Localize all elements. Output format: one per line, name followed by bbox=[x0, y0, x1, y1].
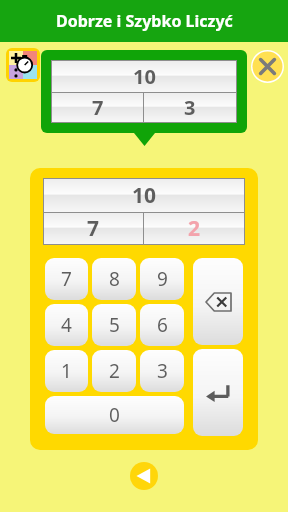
staticText: 1 bbox=[61, 358, 72, 384]
button[interactable]: App icon bbox=[6, 48, 40, 82]
staticText: 10 bbox=[133, 63, 156, 90]
button[interactable]: 5 bbox=[92, 304, 136, 346]
staticText: 4 bbox=[61, 312, 72, 338]
button[interactable]: 4 bbox=[45, 304, 88, 346]
staticText: 2 bbox=[109, 358, 120, 384]
button[interactable]: 8 bbox=[92, 258, 136, 300]
button[interactable]: 0 bbox=[45, 396, 184, 434]
button[interactable]: 7 bbox=[45, 258, 88, 300]
staticText: 10 bbox=[132, 181, 157, 210]
button[interactable]: 9 bbox=[140, 258, 184, 300]
staticText: 7 bbox=[92, 94, 104, 121]
button[interactable]: 1 bbox=[45, 350, 88, 392]
staticText: 3 bbox=[157, 358, 168, 384]
staticText: 5 bbox=[109, 312, 120, 338]
staticText: 7 bbox=[87, 214, 100, 243]
staticText: 7 bbox=[61, 266, 72, 292]
button[interactable]: Backspace bbox=[193, 258, 243, 345]
staticText: 0 bbox=[109, 402, 120, 428]
staticText: 6 bbox=[157, 312, 168, 338]
button[interactable]: Close bbox=[251, 50, 284, 83]
button[interactable]: 2 bbox=[92, 350, 136, 392]
button[interactable]: Enter bbox=[193, 349, 243, 436]
staticText: 3 bbox=[184, 94, 196, 121]
staticText: Dobrze i Szybko Liczyć bbox=[56, 10, 233, 32]
button[interactable]: Back bbox=[130, 462, 158, 490]
staticText: 2 bbox=[188, 214, 201, 243]
button[interactable]: 3 bbox=[140, 350, 184, 392]
staticText: 9 bbox=[157, 266, 168, 292]
button[interactable]: 6 bbox=[140, 304, 184, 346]
staticText: 8 bbox=[109, 266, 120, 292]
